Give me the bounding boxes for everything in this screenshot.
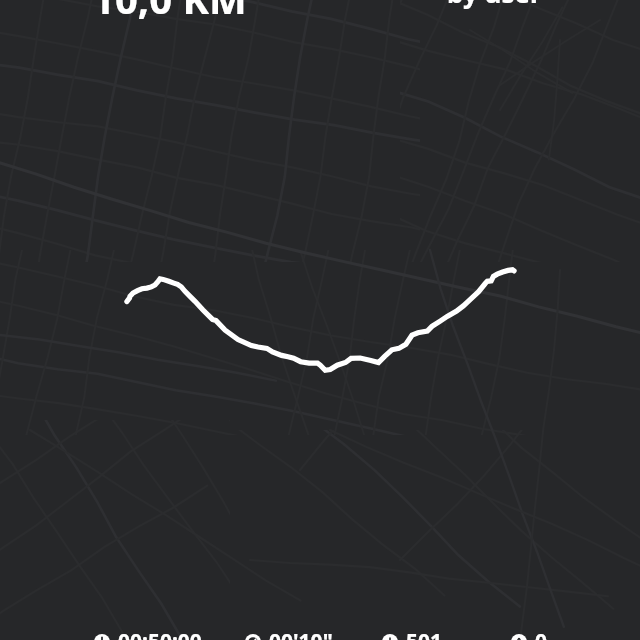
staticText: 00:50:00 — [118, 627, 202, 640]
button[interactable]: Calories — [382, 627, 443, 640]
staticText: 10,0 KM — [92, 0, 247, 25]
staticText: 00'10" — [269, 627, 333, 640]
button[interactable]: Average pace — [245, 627, 333, 640]
staticText: 501 — [406, 627, 443, 640]
staticText: 0 — [535, 627, 548, 640]
button[interactable]: Elevation gain — [511, 627, 548, 640]
staticText: by user — [447, 0, 542, 10]
button[interactable]: Duration — [94, 627, 202, 640]
